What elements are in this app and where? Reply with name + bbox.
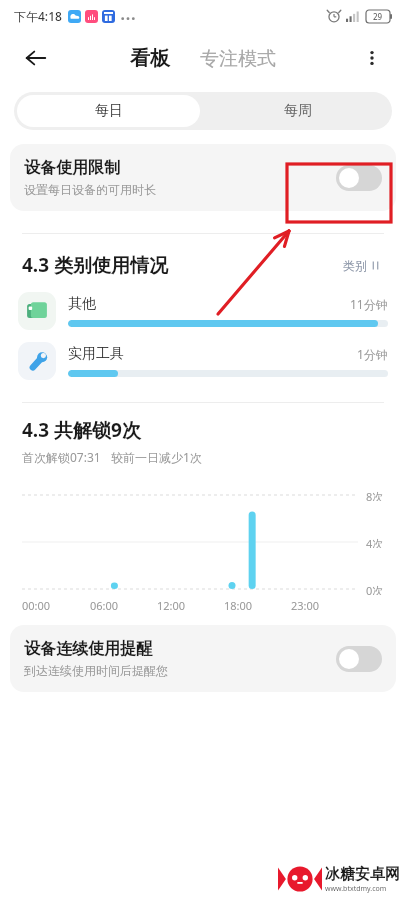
- staticText: 首次解锁07:31: [22, 449, 101, 465]
- staticText: 4.3 类别使用情况: [22, 252, 169, 278]
- staticText: 8次: [366, 489, 384, 501]
- staticText: 29: [373, 11, 383, 22]
- staticText: 23:00: [291, 598, 320, 613]
- staticText: 每日: [95, 102, 123, 120]
- button[interactable]: 每日: [17, 95, 200, 127]
- staticText: 下午4:18: [14, 8, 62, 24]
- button[interactable]: 看板: [122, 42, 178, 75]
- staticText: 到达连续使用时间后提醒您: [24, 663, 168, 678]
- staticText: www.btxtdmy.com: [325, 884, 387, 894]
- staticText: 4.3 共解锁9次: [22, 417, 141, 443]
- button[interactable]: 实用工具: [18, 342, 388, 380]
- staticText: 看板: [130, 46, 170, 71]
- staticText: 11分钟: [350, 296, 388, 312]
- staticText: 其他: [68, 295, 96, 313]
- staticText: 较前一日减少1次: [111, 449, 202, 465]
- staticText: 设置每日设备的可用时长: [24, 182, 156, 197]
- staticText: 18:00: [224, 598, 253, 613]
- staticText: 0次: [366, 583, 384, 595]
- button[interactable]: 设备连续使用提醒: [10, 625, 396, 692]
- staticText: 实用工具: [68, 345, 124, 363]
- button[interactable]: Back: [18, 40, 54, 76]
- staticText: 专注模式: [200, 47, 276, 71]
- staticText: 00:00: [22, 598, 51, 613]
- staticText: 06:00: [90, 598, 119, 613]
- staticText: 12:00: [157, 598, 186, 613]
- button[interactable]: Toggle: [336, 646, 382, 672]
- staticText: 类别: [343, 258, 367, 273]
- staticText: 设备连续使用提醒: [24, 639, 152, 659]
- button[interactable]: 类别: [339, 254, 384, 277]
- button[interactable]: Toggle: [336, 165, 382, 191]
- button[interactable]: 每周: [203, 92, 392, 130]
- staticText: 1分钟: [357, 346, 388, 362]
- staticText: 4次: [366, 536, 384, 548]
- button[interactable]: More options: [354, 40, 390, 76]
- button[interactable]: 专注模式: [192, 43, 284, 75]
- button[interactable]: 其他: [18, 292, 388, 330]
- button[interactable]: 设备使用限制: [10, 144, 396, 211]
- staticText: 冰糖安卓网: [325, 865, 400, 884]
- staticText: 设备使用限制: [24, 158, 120, 178]
- staticText: 每周: [284, 102, 312, 120]
